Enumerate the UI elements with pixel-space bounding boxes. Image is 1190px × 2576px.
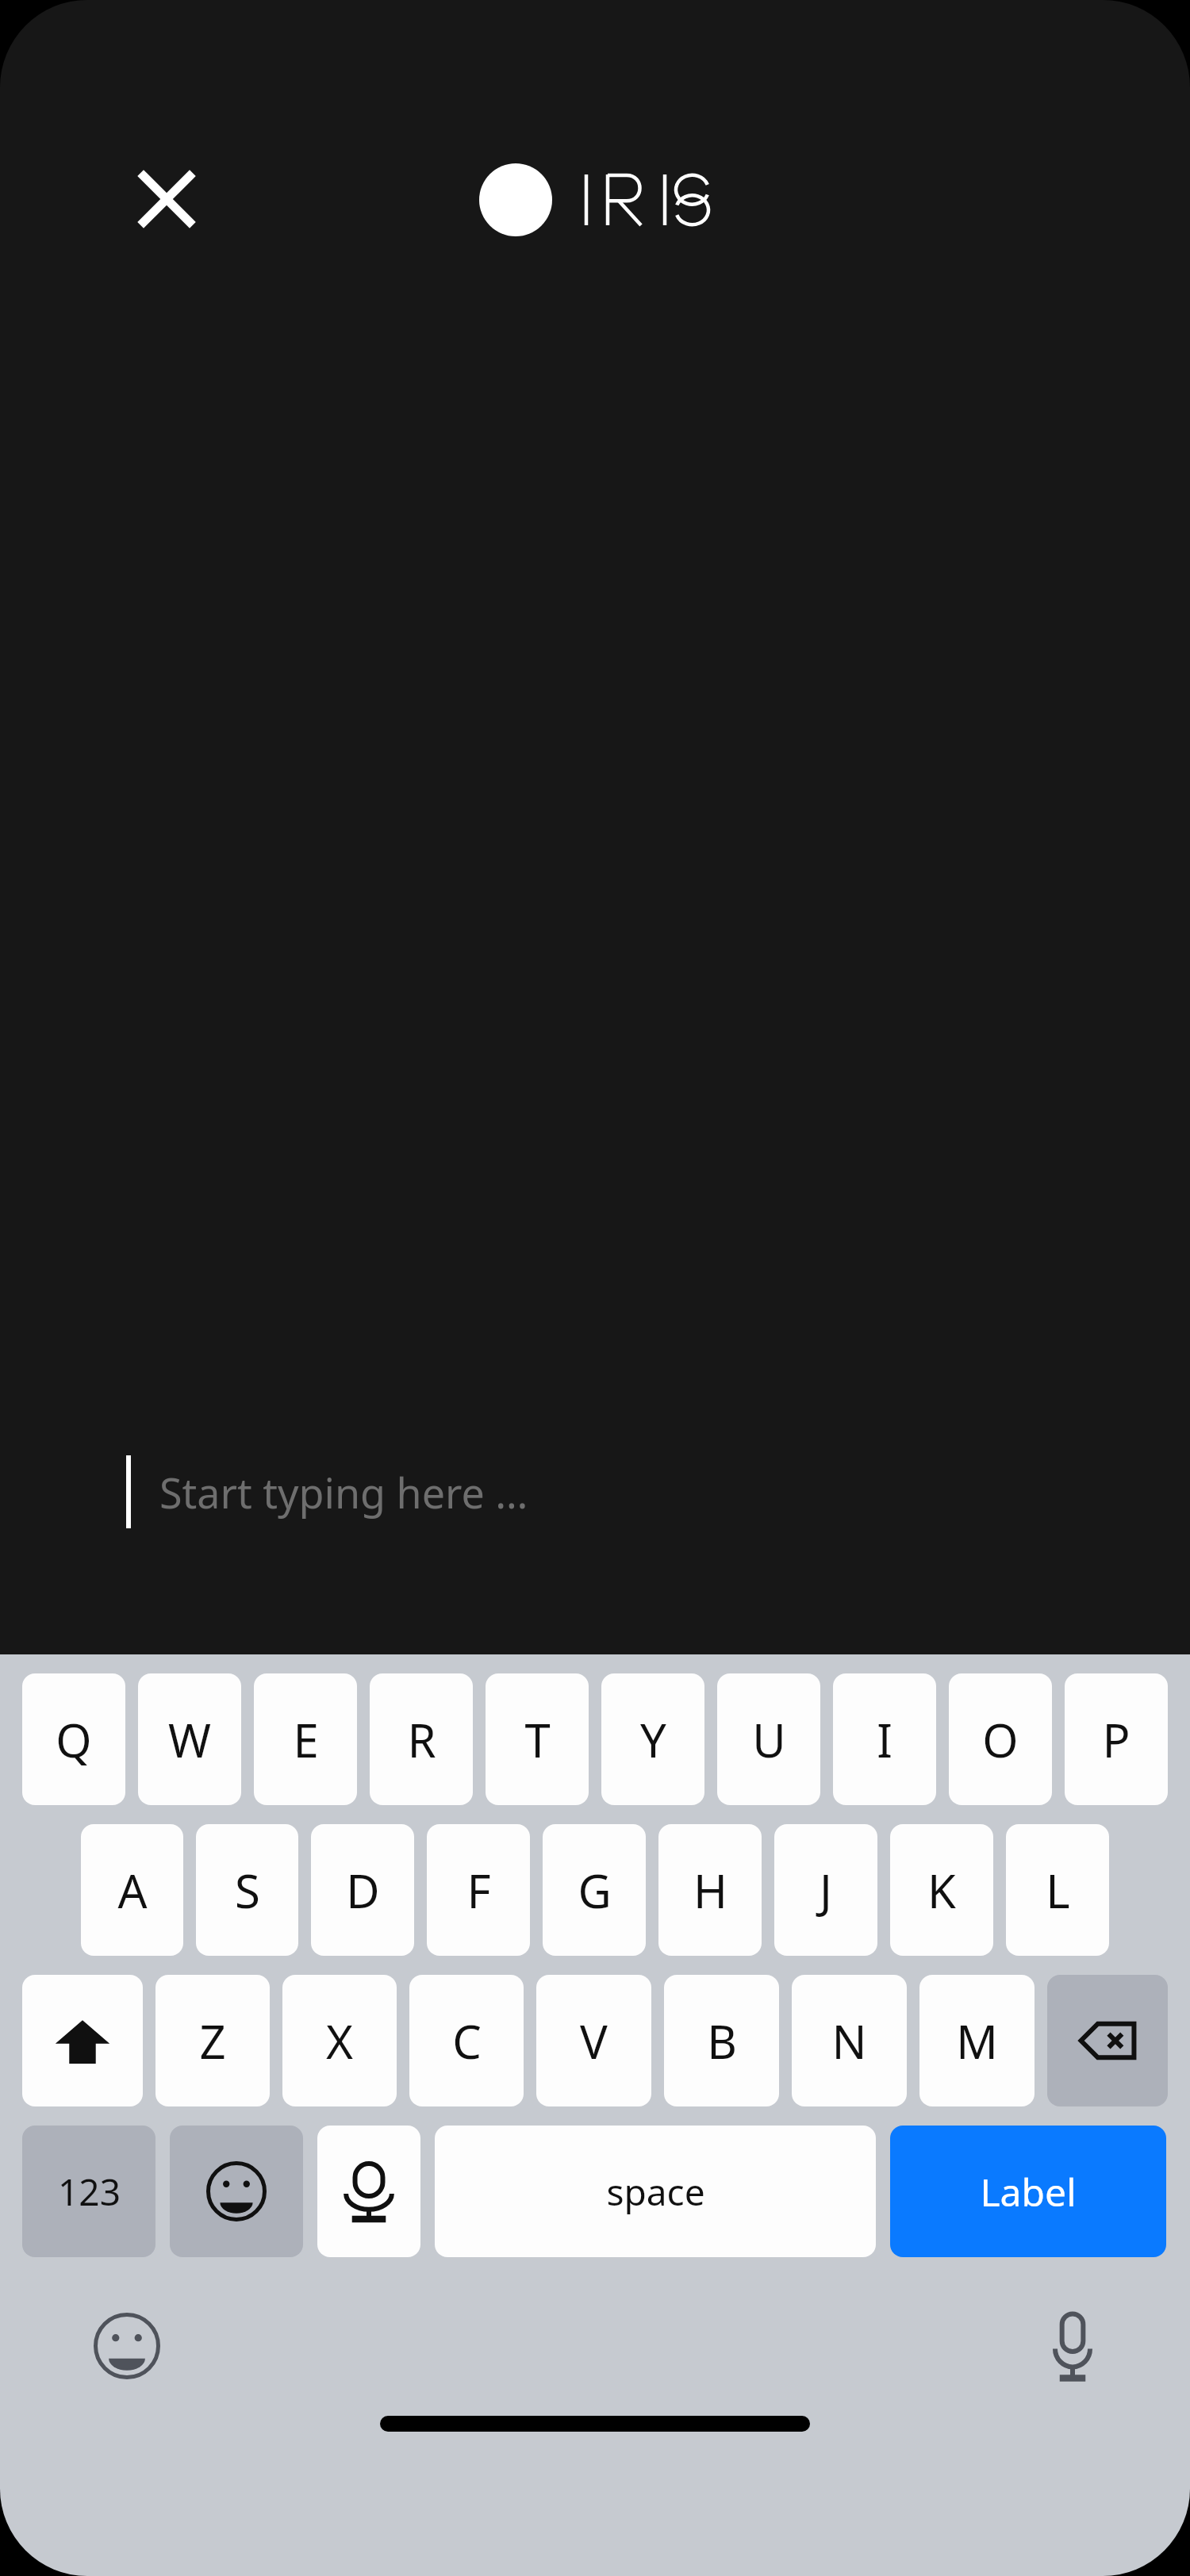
staticText: Label (980, 2166, 1077, 2218)
button[interactable]: O (949, 1673, 1052, 1805)
button[interactable]: R (370, 1673, 473, 1805)
staticText: U (752, 1708, 786, 1771)
staticText: H (693, 1859, 727, 1922)
button[interactable]: K (890, 1824, 993, 1956)
button[interactable]: J (774, 1824, 877, 1956)
button[interactable]: S (196, 1824, 298, 1956)
staticText: V (580, 2010, 608, 2072)
button[interactable]: Q (22, 1673, 125, 1805)
button[interactable]: 123 (22, 2126, 155, 2257)
staticText: D (346, 1859, 380, 1922)
button[interactable]: B (664, 1975, 779, 2106)
staticText: B (707, 2010, 737, 2072)
staticText: E (293, 1708, 319, 1771)
button[interactable]: Voice input (317, 2126, 420, 2257)
staticText: T (524, 1708, 551, 1771)
staticText: X (326, 2010, 353, 2072)
button[interactable]: Label (890, 2126, 1166, 2257)
button[interactable]: Start typing here … (0, 1434, 1190, 1550)
staticText: Y (640, 1708, 666, 1771)
staticText: P (1102, 1708, 1130, 1771)
button[interactable]: L (1006, 1824, 1109, 1956)
button[interactable]: G (543, 1824, 646, 1956)
staticText: W (168, 1708, 211, 1771)
button[interactable]: E (254, 1673, 357, 1805)
staticText: I (877, 1708, 892, 1771)
staticText: G (578, 1859, 612, 1922)
staticText: A (117, 1859, 148, 1922)
staticText: C (452, 2010, 482, 2072)
button[interactable]: Emoji keyboard (78, 2297, 176, 2395)
staticText: S (235, 1859, 260, 1922)
button[interactable]: T (486, 1673, 589, 1805)
button[interactable]: P (1065, 1673, 1168, 1805)
button[interactable]: I (833, 1673, 936, 1805)
staticText: 123 (58, 2167, 121, 2217)
button[interactable]: space (435, 2126, 876, 2257)
staticText: Start typing here … (159, 1464, 528, 1520)
button[interactable]: Voice input (1023, 2297, 1122, 2395)
button[interactable]: A (81, 1824, 183, 1956)
staticText: L (1046, 1859, 1070, 1922)
button[interactable]: V (536, 1975, 651, 2106)
staticText: J (820, 1859, 832, 1922)
staticText: R (407, 1708, 436, 1771)
button[interactable]: Y (601, 1673, 704, 1805)
button[interactable] (479, 163, 711, 236)
staticText: O (982, 1708, 1019, 1771)
button[interactable]: Z (155, 1975, 270, 2106)
button[interactable]: H (658, 1824, 762, 1956)
button[interactable]: Shift (22, 1975, 143, 2106)
button[interactable]: N (792, 1975, 907, 2106)
button[interactable]: Emoji (170, 2126, 303, 2257)
staticText: space (606, 2167, 705, 2217)
staticText: M (956, 2010, 998, 2072)
button[interactable]: U (717, 1673, 820, 1805)
staticText: F (466, 1859, 491, 1922)
staticText: Z (199, 2010, 226, 2072)
button[interactable]: Backspace (1047, 1975, 1168, 2106)
button[interactable]: F (427, 1824, 530, 1956)
button[interactable]: X (282, 1975, 397, 2106)
button[interactable]: W (138, 1673, 241, 1805)
button[interactable]: C (409, 1975, 524, 2106)
staticText: N (831, 2010, 867, 2072)
button[interactable]: Close (122, 155, 211, 243)
button[interactable]: M (919, 1975, 1035, 2106)
button[interactable]: D (311, 1824, 414, 1956)
staticText: K (927, 1859, 956, 1922)
staticText: Q (56, 1708, 92, 1771)
